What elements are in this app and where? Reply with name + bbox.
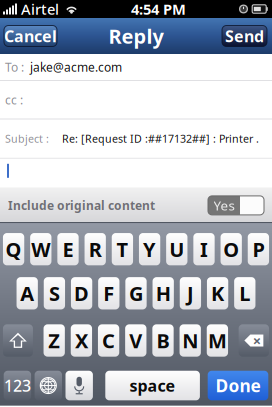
staticText: V: [129, 327, 142, 354]
staticText: Airtel: [21, 0, 59, 19]
button[interactable]: R: [84, 233, 106, 265]
button[interactable]: space: [105, 371, 200, 400]
staticText: H: [156, 280, 171, 307]
staticText: Send: [225, 25, 264, 47]
staticText: M: [208, 327, 227, 354]
staticText: Cancel: [4, 25, 57, 47]
button[interactable]: S: [44, 277, 65, 309]
button[interactable]: F: [98, 277, 119, 309]
button[interactable]: A: [16, 277, 38, 309]
button[interactable]: E: [57, 233, 79, 265]
button[interactable]: Z: [44, 324, 65, 357]
button[interactable]: Yes: [208, 196, 264, 215]
staticText: B: [156, 327, 169, 354]
button[interactable]: Delete: [239, 324, 269, 357]
staticText: W: [31, 236, 50, 262]
staticText: Reply: [108, 23, 163, 49]
staticText: jake@acme.com: [30, 59, 122, 75]
staticText: J: [187, 280, 194, 307]
button[interactable]: N: [180, 324, 201, 357]
staticText: To :: [5, 59, 24, 75]
staticText: 123: [4, 375, 31, 396]
staticText: A: [20, 280, 34, 307]
button[interactable]: Done: [208, 371, 268, 400]
staticText: Re: [Request ID :##17132##] : Printer .: [62, 132, 259, 146]
staticText: X: [75, 327, 88, 354]
staticText: 4:54 PM: [131, 0, 186, 19]
button[interactable]: K: [207, 277, 228, 309]
staticText: U: [169, 236, 184, 262]
staticText: O: [223, 236, 239, 262]
button[interactable]: Dictation: [65, 371, 93, 400]
staticText: Q: [6, 236, 22, 262]
staticText: N: [182, 327, 198, 354]
button[interactable]: H: [153, 277, 174, 309]
button[interactable]: T: [112, 233, 133, 265]
staticText: Yes: [213, 196, 234, 214]
staticText: R: [89, 236, 102, 262]
button[interactable]: L: [234, 277, 255, 309]
button[interactable]: B: [152, 324, 174, 357]
button[interactable]: Numbers: [4, 371, 31, 400]
button[interactable]: X: [71, 324, 92, 357]
button[interactable]: Shift: [3, 324, 33, 357]
button[interactable]: V: [125, 324, 146, 357]
staticText: K: [211, 280, 224, 307]
staticText: Include original content: [8, 197, 155, 213]
staticText: E: [62, 236, 73, 262]
button[interactable]: I: [193, 233, 215, 265]
button[interactable]: W: [30, 233, 51, 265]
button[interactable]: Next keyboard: [35, 371, 62, 400]
staticText: Done: [215, 374, 260, 397]
button[interactable]: U: [166, 233, 187, 265]
staticText: Subject :: [5, 132, 49, 146]
staticText: ×: [253, 331, 261, 350]
button[interactable]: G: [125, 277, 147, 309]
button[interactable]: O: [220, 233, 242, 265]
staticText: P: [252, 236, 264, 262]
staticText: space: [130, 375, 176, 396]
button[interactable]: Send: [222, 25, 267, 46]
staticText: F: [103, 280, 114, 307]
button[interactable]: D: [71, 277, 92, 309]
button[interactable]: Cancel: [4, 25, 57, 46]
button[interactable]: P: [248, 233, 269, 265]
button[interactable]: M: [207, 324, 228, 357]
staticText: Z: [48, 327, 60, 354]
button[interactable]: C: [98, 324, 119, 357]
staticText: D: [74, 280, 89, 307]
button[interactable]: Y: [139, 233, 160, 265]
staticText: cc :: [5, 92, 23, 108]
staticText: Y: [143, 236, 156, 262]
button[interactable]: J: [180, 277, 201, 309]
staticText: S: [49, 280, 60, 307]
button[interactable]: Q: [3, 233, 24, 265]
staticText: C: [102, 327, 115, 354]
staticText: G: [129, 280, 143, 307]
staticText: T: [116, 236, 128, 262]
staticText: I: [200, 236, 208, 262]
staticText: L: [239, 280, 250, 307]
